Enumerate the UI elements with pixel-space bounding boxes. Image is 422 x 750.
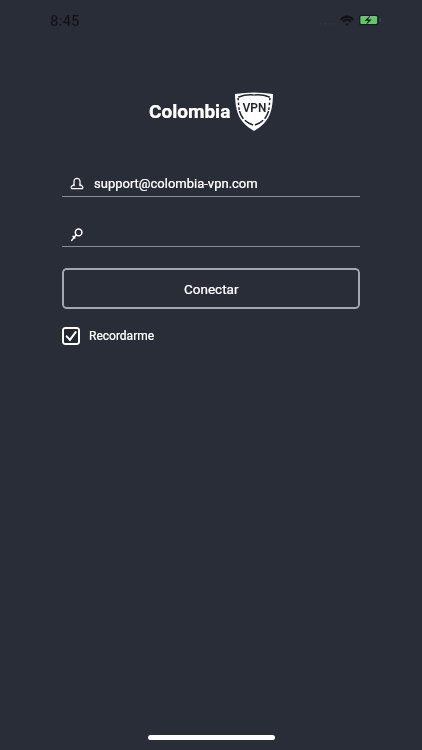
button[interactable]: Conectar — [62, 268, 360, 309]
staticText: support@colombia-vpn.com — [94, 176, 258, 191]
staticText: Colombia — [149, 100, 231, 122]
button[interactable]: Contraseña — [62, 217, 360, 247]
button[interactable]: Usuario — [62, 167, 360, 197]
button[interactable]: Recordarme — [62, 327, 155, 345]
staticText: 8:45 — [50, 12, 80, 30]
staticText: Conectar — [184, 281, 239, 297]
staticText: Recordarme — [89, 329, 155, 343]
staticText: VPN — [242, 101, 267, 115]
